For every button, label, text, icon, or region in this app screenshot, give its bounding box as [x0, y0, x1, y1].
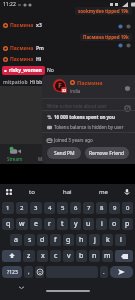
- staticText: c: [54, 251, 58, 261]
- button[interactable]: 1: [2, 202, 14, 214]
- button[interactable]: o: [109, 218, 120, 230]
- staticText: h: [79, 235, 84, 245]
- button[interactable]: Backspace: [115, 250, 133, 262]
- button[interactable]: l: [115, 234, 126, 246]
- button[interactable]: b: [76, 250, 87, 262]
- staticText: No: [47, 67, 54, 74]
- button[interactable]: v: [63, 250, 74, 262]
- button[interactable]: h: [76, 234, 87, 246]
- staticText: i: [101, 219, 103, 229]
- staticText: 9: [113, 204, 117, 212]
- button[interactable]: me: [85, 184, 121, 199]
- button[interactable]: Shift: [2, 250, 21, 262]
- staticText: india: [70, 88, 81, 94]
- button[interactable]: ?123: [2, 266, 22, 278]
- button[interactable]: ,: [24, 266, 33, 278]
- button[interactable]: 4: [44, 202, 55, 214]
- button[interactable]: t: [57, 218, 68, 230]
- button[interactable]: Voice input: [121, 186, 132, 197]
- button[interactable]: Send PM: [47, 147, 81, 159]
- button[interactable]: f: [50, 234, 61, 246]
- staticText: Пасмина: [10, 56, 34, 63]
- staticText: b: [79, 251, 84, 261]
- staticText: 6: [74, 204, 78, 212]
- staticText: Hi: [36, 56, 42, 63]
- staticText: l: [120, 235, 122, 245]
- staticText: f: [54, 235, 57, 245]
- staticText: Пасмина tipped 19k: [83, 34, 129, 40]
- button[interactable]: 7: [83, 202, 94, 214]
- button[interactable]: 5: [57, 202, 68, 214]
- button[interactable]: n: [89, 250, 100, 262]
- staticText: Hi bby Wh: [30, 79, 54, 86]
- button[interactable]: y: [70, 218, 81, 230]
- button[interactable]: j: [89, 234, 100, 246]
- button[interactable]: 2: [16, 202, 28, 214]
- staticText: F: [58, 81, 62, 91]
- staticText: Stream: [7, 156, 23, 162]
- staticText: r: [48, 219, 51, 229]
- staticText: x3: [36, 22, 42, 29]
- button[interactable]: Remove Friend: [85, 147, 129, 159]
- button[interactable]: Moderate: [123, 84, 131, 92]
- button[interactable]: p: [122, 218, 133, 230]
- button[interactable]: x: [37, 250, 48, 262]
- staticText: a: [14, 235, 18, 245]
- button[interactable]: r: [44, 218, 55, 230]
- staticText: Send PM: [54, 150, 75, 157]
- button[interactable]: 3: [30, 202, 42, 214]
- button[interactable]: k: [102, 234, 113, 246]
- button[interactable]: to: [14, 184, 49, 199]
- staticText: Write a nice note about user: [47, 103, 107, 109]
- staticText: 8: [100, 204, 104, 212]
- button[interactable]: 0: [122, 202, 133, 214]
- staticText: s: [28, 235, 32, 245]
- button[interactable]: z: [23, 250, 35, 262]
- button[interactable]: w: [16, 218, 28, 230]
- staticText: o: [112, 219, 117, 229]
- button[interactable]: e: [30, 218, 42, 230]
- button[interactable]: Пасмина tipped 19k: [83, 34, 129, 40]
- button[interactable]: Stream: [3, 145, 27, 163]
- staticText: Tokens balance is hidden by user: [54, 124, 124, 130]
- staticText: e: [34, 219, 38, 229]
- button[interactable]: Send: [110, 266, 133, 278]
- staticText: x: [41, 251, 45, 261]
- staticText: 7: [87, 204, 91, 212]
- button[interactable]: i: [96, 218, 107, 230]
- button[interactable]: Mic: [30, 145, 54, 163]
- staticText: n: [92, 251, 97, 261]
- staticText: Пасмина: [77, 79, 103, 86]
- staticText: d: [40, 235, 45, 245]
- button[interactable]: hai: [49, 184, 85, 199]
- staticText: m: [104, 251, 111, 261]
- button[interactable]: c: [50, 250, 61, 262]
- button[interactable]: Edit note: [123, 104, 131, 112]
- button[interactable]: s: [24, 234, 35, 246]
- button[interactable]: Apps: [3, 186, 14, 197]
- button[interactable]: 6: [70, 202, 81, 214]
- button[interactable]: .: [100, 266, 108, 278]
- button[interactable]: 8: [96, 202, 107, 214]
- staticText: ,: [28, 268, 30, 276]
- staticText: t: [61, 219, 64, 229]
- staticText: w: [19, 219, 25, 229]
- button[interactable]: u: [83, 218, 94, 230]
- staticText: 32: [62, 88, 67, 93]
- staticText: hai: [63, 188, 72, 196]
- button[interactable]: a: [10, 234, 22, 246]
- button[interactable]: g: [63, 234, 74, 246]
- button[interactable]: d: [37, 234, 48, 246]
- staticText: mitpatiob: [3, 79, 28, 86]
- staticText: 2: [20, 204, 24, 212]
- button[interactable]: sookmydee tipped 19k: [78, 8, 129, 14]
- button[interactable]: Emoji: [35, 266, 44, 278]
- staticText: Mic: [38, 156, 46, 162]
- staticText: 4: [48, 204, 52, 212]
- staticText: 5: [61, 204, 65, 212]
- button[interactable]: risky_women: [4, 67, 42, 74]
- button[interactable]: m: [102, 250, 113, 262]
- button[interactable]: 9: [109, 202, 120, 214]
- button[interactable]: q: [2, 218, 14, 230]
